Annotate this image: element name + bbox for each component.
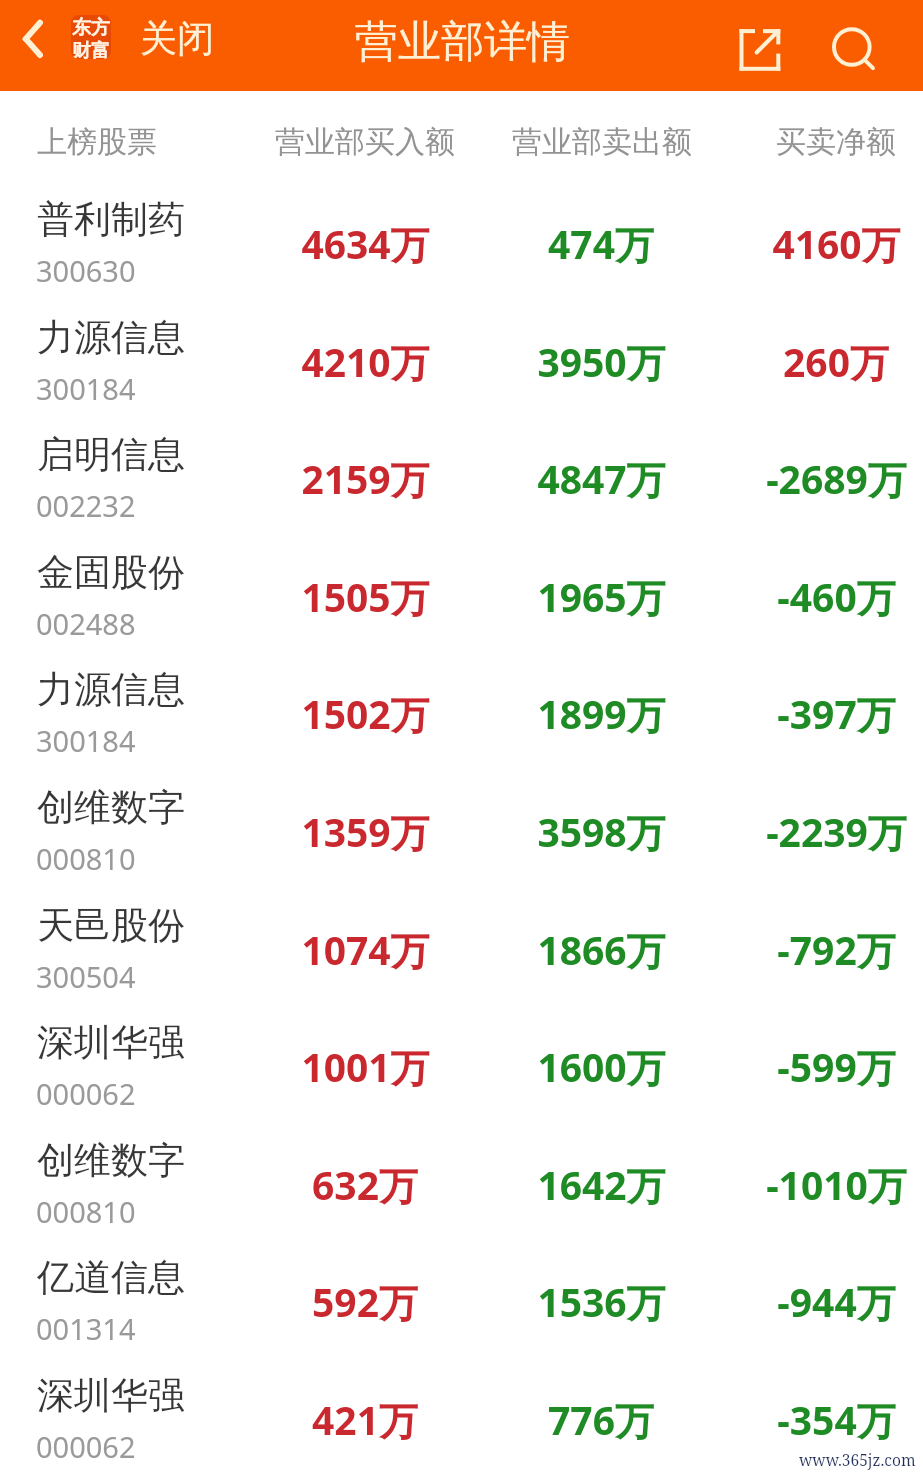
staticText: 东方 [71,16,111,40]
staticText: 启明信息 [37,431,185,478]
staticText: -354万 [777,1393,896,1446]
staticText: 上榜股票 [37,123,157,161]
staticText: 深圳华强 [37,1372,185,1419]
staticText: 4634万 [301,217,430,270]
button[interactable]: Share [730,20,790,80]
staticText: 000810 [36,1192,136,1231]
staticText: 1359万 [301,805,430,858]
staticText: 1001万 [301,1040,430,1093]
staticText: 4847万 [537,452,666,505]
staticText: -397万 [777,687,896,740]
button[interactable]: 天邑股份 [0,885,923,1003]
staticText: 亿道信息 [37,1254,185,1301]
staticText: 1505万 [301,570,430,623]
staticText: 2159万 [301,452,430,505]
staticText: 营业部买入额 [275,123,455,161]
button[interactable]: 普利制药 [0,179,923,297]
staticText: 592万 [312,1275,418,1328]
staticText: 000062 [36,1427,136,1466]
staticText: 创维数字 [37,784,185,831]
button[interactable]: 启明信息 [0,414,923,532]
staticText: -1010万 [766,1158,907,1211]
staticText: 1642万 [537,1158,666,1211]
button[interactable]: 创维数字 [0,1120,923,1238]
button[interactable]: 力源信息 [0,297,923,415]
staticText: 1600万 [537,1040,666,1093]
staticText: 1536万 [537,1275,666,1328]
staticText: www.365jz.com [799,1449,916,1470]
staticText: 776万 [548,1393,654,1446]
staticText: 力源信息 [37,666,185,713]
staticText: 4210万 [301,335,430,388]
staticText: 260万 [783,335,889,388]
button[interactable]: 金固股份 [0,532,923,650]
staticText: -599万 [777,1040,896,1093]
staticText: 1866万 [537,923,666,976]
button[interactable]: 深圳华强 [0,1355,923,1473]
staticText: 300504 [36,957,136,996]
staticText: 300184 [36,369,136,408]
staticText: 1074万 [301,923,430,976]
button[interactable]: 关闭 [130,0,224,78]
staticText: 深圳华强 [37,1019,185,1066]
staticText: 1965万 [537,570,666,623]
staticText: 3950万 [537,335,666,388]
staticText: 002488 [36,604,136,643]
button[interactable]: Back [0,0,60,91]
button[interactable]: 亿道信息 [0,1237,923,1355]
button[interactable]: Search [812,8,892,88]
button[interactable]: 力源信息 [0,649,923,767]
staticText: -2689万 [766,452,907,505]
staticText: -944万 [777,1275,896,1328]
staticText: 001314 [36,1309,136,1348]
staticText: 000062 [36,1074,136,1113]
staticText: 关闭 [140,15,214,62]
staticText: 营业部卖出额 [512,123,692,161]
staticText: 421万 [312,1393,418,1446]
staticText: 3598万 [537,805,666,858]
staticText: 300184 [36,721,136,760]
staticText: 创维数字 [37,1137,185,1184]
staticText: 4160万 [772,217,901,270]
button[interactable]: 创维数字 [0,767,923,885]
staticText: 普利制药 [37,196,185,243]
staticText: 632万 [312,1158,418,1211]
button[interactable]: 深圳华强 [0,1002,923,1120]
staticText: -792万 [777,923,896,976]
staticText: 1502万 [301,687,430,740]
staticText: 天邑股份 [37,902,185,949]
staticText: 力源信息 [37,314,185,361]
staticText: 300630 [36,251,136,290]
staticText: 营业部详情 [355,15,570,69]
staticText: 1899万 [537,687,666,740]
staticText: 474万 [548,217,654,270]
staticText: -460万 [777,570,896,623]
staticText: 金固股份 [37,549,185,596]
staticText: 买卖净额 [776,123,896,161]
staticText: 000810 [36,839,136,878]
staticText: 财富 [71,39,111,59]
staticText: -2239万 [766,805,907,858]
staticText: 002232 [36,486,136,525]
